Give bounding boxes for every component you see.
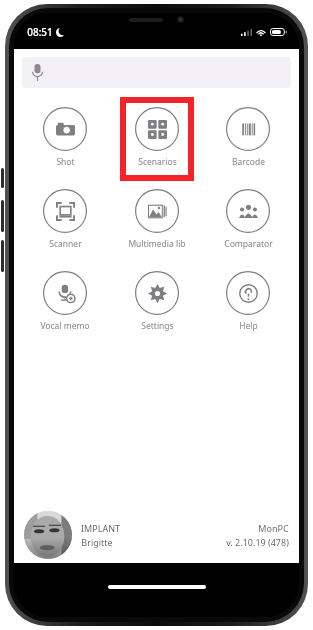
staticText: 08:51 [27, 25, 53, 39]
staticText: Multimedia lib [128, 238, 186, 250]
staticText: Shot [56, 156, 75, 168]
button[interactable]: Multimedia lib [117, 182, 197, 250]
staticText: IMPLANT [81, 522, 120, 534]
button[interactable]: Vocal memo [25, 264, 105, 332]
staticText: v. 2.10.19 (478) [226, 536, 289, 548]
staticText: Scanner [49, 238, 82, 250]
staticText: Scenarios [138, 156, 177, 168]
staticText: Help [239, 320, 258, 332]
button[interactable]: Shot [25, 100, 105, 168]
button[interactable]: Help [208, 264, 288, 332]
staticText: MonPC [258, 522, 289, 534]
staticText: Settings [141, 320, 174, 332]
staticText: Brigitte [81, 536, 113, 548]
button[interactable]: Scanner [25, 182, 105, 250]
button[interactable]: Barcode [208, 100, 288, 168]
button[interactable]: Voice search [22, 57, 291, 88]
staticText: Vocal memo [40, 320, 90, 332]
button[interactable]: Scenarios [117, 100, 197, 168]
button[interactable]: Comparator [208, 182, 288, 250]
staticText: Barcode [232, 156, 265, 168]
staticText: Comparator [224, 238, 273, 250]
button[interactable]: IMPLANT [14, 507, 299, 563]
button[interactable]: Settings [117, 264, 197, 332]
